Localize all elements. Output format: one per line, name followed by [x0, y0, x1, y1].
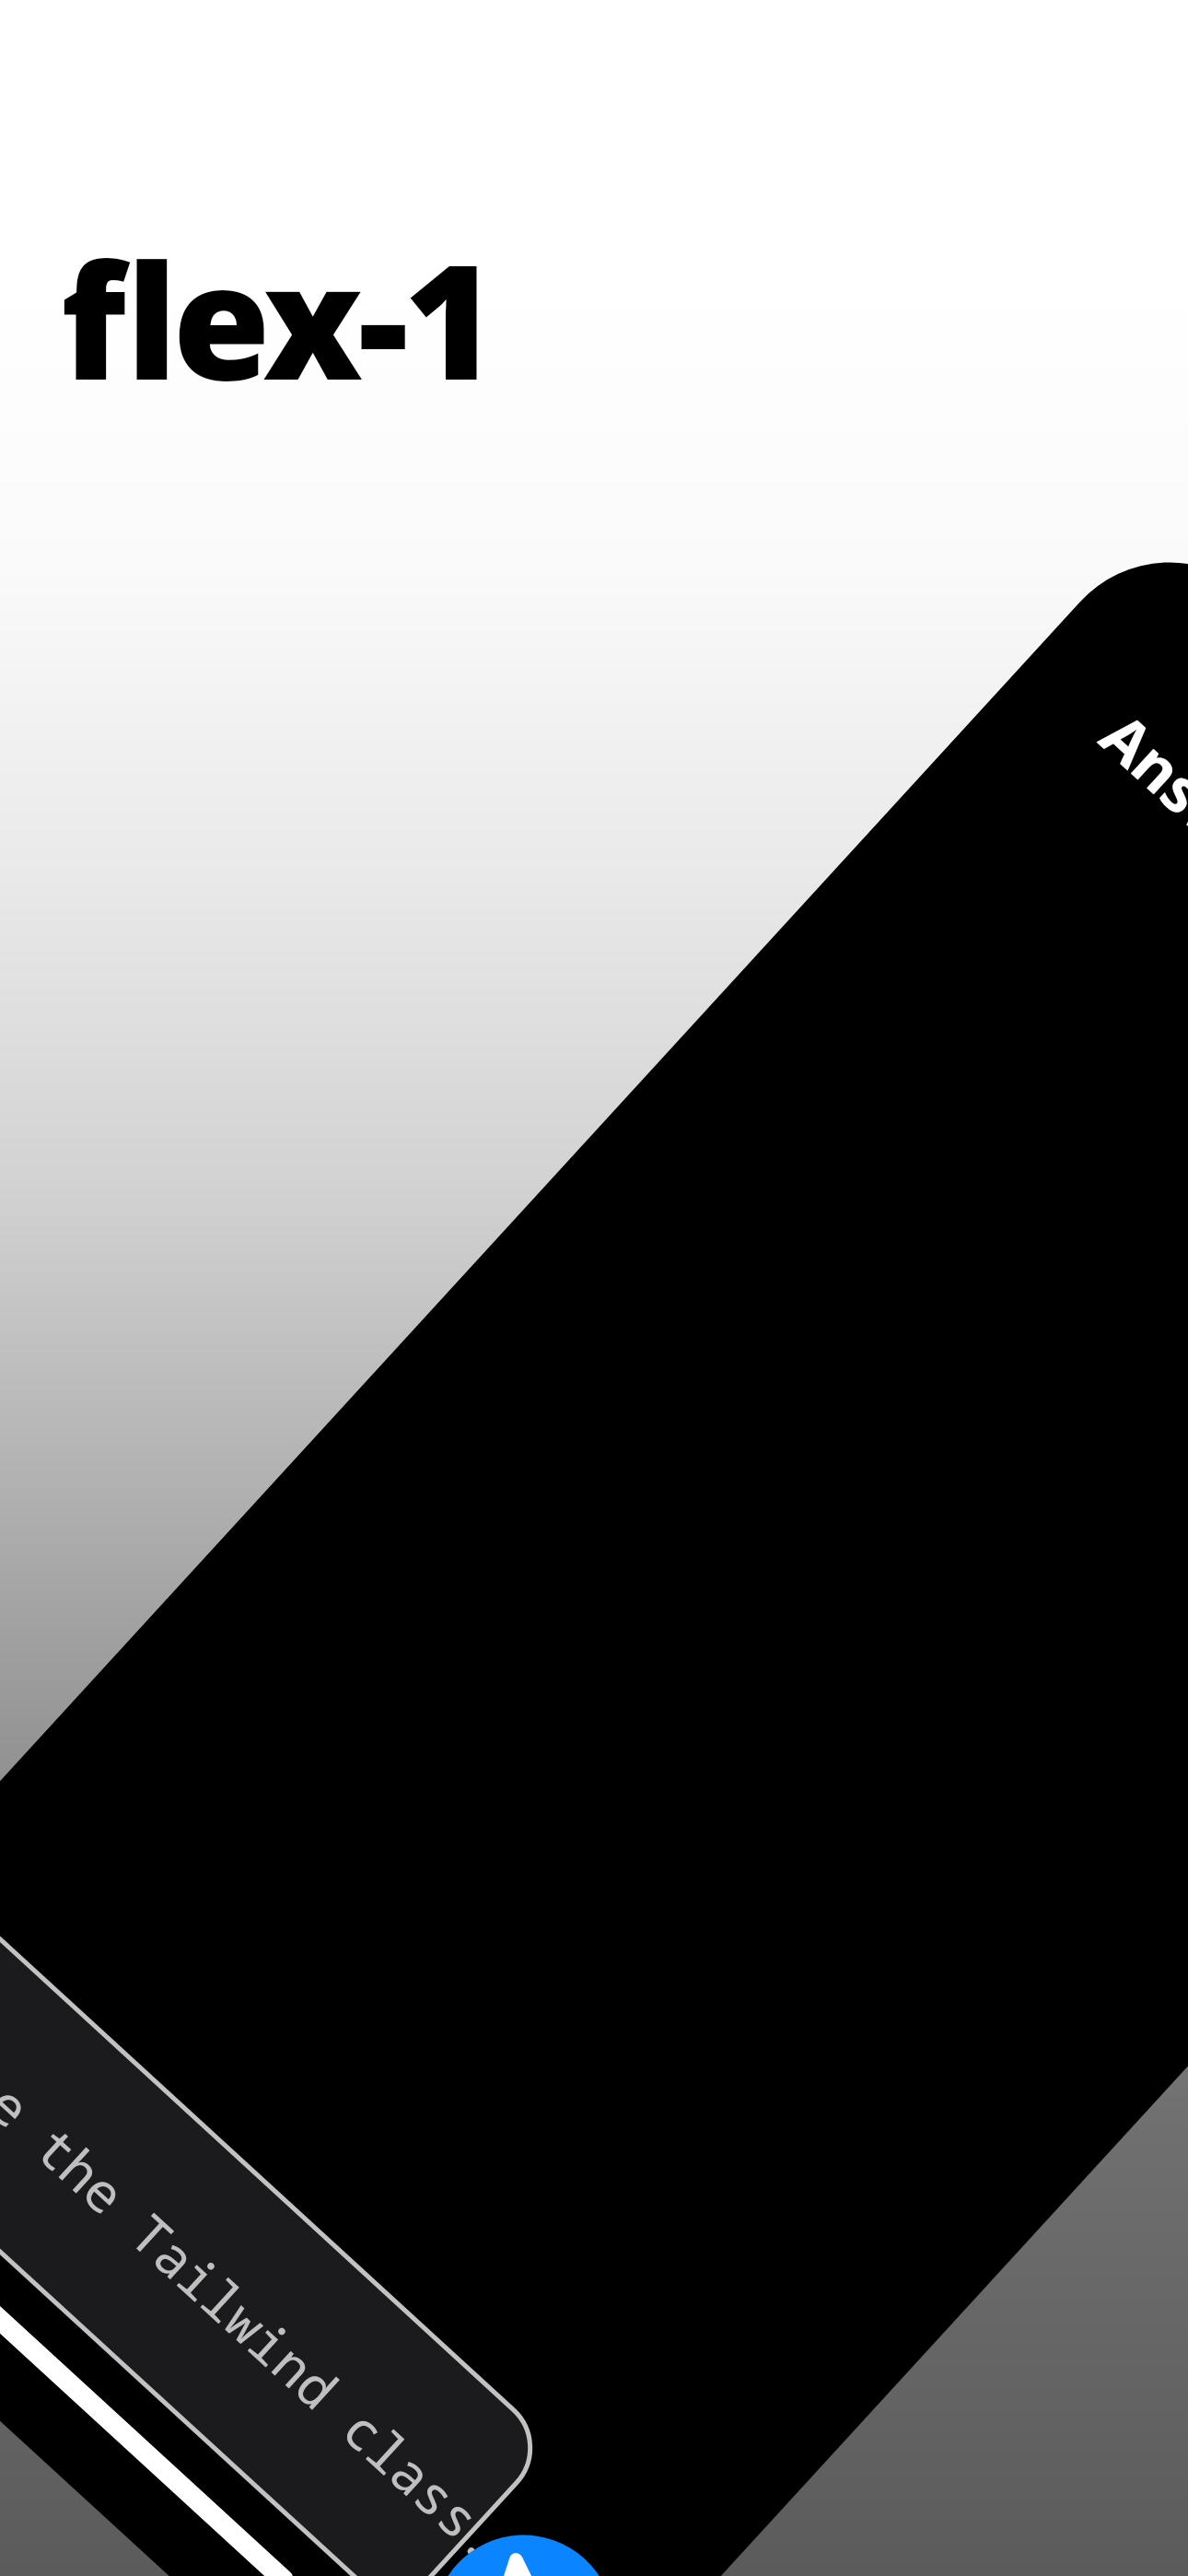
button[interactable]: Type the Tailwind class input [41, 311, 188, 422]
